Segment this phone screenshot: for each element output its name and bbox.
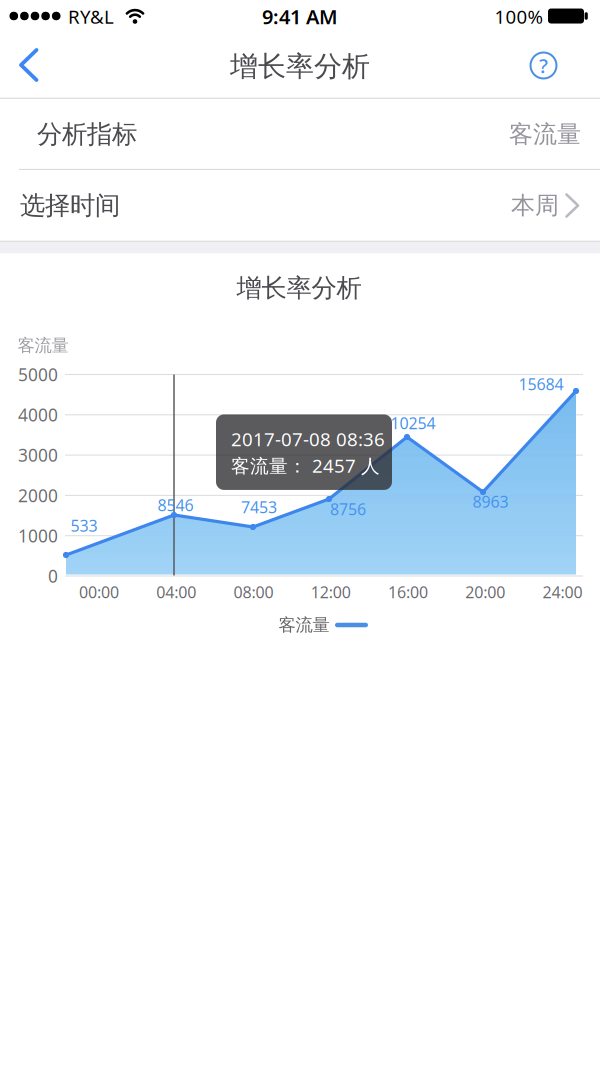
staticText: 100% (494, 4, 543, 29)
staticText: ? (539, 52, 548, 79)
staticText: 5000 (18, 363, 58, 386)
staticText: 2000 (18, 484, 58, 507)
staticText: 8756 (330, 498, 366, 520)
staticText: 0 (48, 564, 58, 587)
staticText: 客流量： 2457 人 (231, 453, 380, 478)
staticText: 7453 (241, 496, 277, 518)
staticText: 客流量 (278, 614, 329, 636)
staticText: 04:00 (156, 581, 196, 603)
staticText: 分析指标 (37, 119, 137, 150)
staticText: 20:00 (465, 581, 505, 603)
staticText: 12:00 (311, 581, 351, 603)
staticText: 10254 (390, 412, 435, 434)
button[interactable]: Help (526, 48, 560, 82)
staticText: 8546 (157, 494, 193, 516)
staticText: 8963 (472, 491, 508, 512)
staticText: 2017-07-08 08:36 (231, 427, 385, 451)
staticText: 3000 (18, 444, 58, 467)
staticText: 9:41 AM (262, 3, 338, 30)
button[interactable]: Back (6, 37, 50, 93)
staticText: 本周 (511, 191, 559, 220)
staticText: 客流量 (17, 335, 68, 356)
staticText: 15684 (518, 373, 563, 395)
button[interactable]: 选择时间 (0, 170, 600, 241)
staticText: 24:00 (543, 581, 583, 603)
staticText: 增长率分析 (236, 272, 361, 303)
staticText: 16:00 (388, 581, 428, 603)
staticText: 4000 (18, 403, 58, 426)
staticText: 533 (70, 515, 97, 536)
staticText: RY&L (68, 4, 114, 29)
staticText: 增长率分析 (230, 49, 370, 84)
staticText: 00:00 (79, 581, 119, 603)
button[interactable]: 分析指标 (0, 99, 600, 169)
staticText: 选择时间 (20, 190, 120, 221)
staticText: 08:00 (233, 581, 273, 603)
staticText: 客流量 (509, 120, 581, 149)
staticText: 1000 (18, 524, 58, 547)
